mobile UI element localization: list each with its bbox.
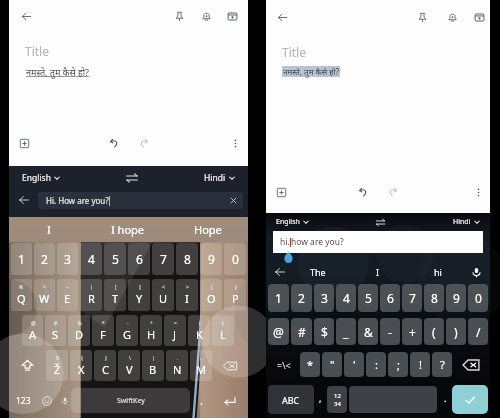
button[interactable]: . [439, 383, 452, 416]
button[interactable]: Redo [382, 181, 404, 203]
button[interactable]: & [358, 318, 378, 345]
button[interactable]: 4 [336, 284, 356, 312]
button[interactable]: SwiftKey [71, 388, 190, 413]
button[interactable]: Hope [168, 217, 248, 241]
button[interactable]: Backspace [213, 349, 247, 382]
button[interactable]: Undo [352, 181, 374, 203]
button[interactable]: , [314, 383, 327, 416]
button[interactable]: ^ [34, 279, 55, 311]
button[interactable]: 0 [468, 284, 488, 312]
button[interactable]: Add [270, 181, 292, 203]
button[interactable]: Swap languages [375, 217, 386, 228]
button[interactable]: ] [128, 279, 150, 311]
button[interactable]: + [140, 315, 162, 346]
button[interactable]: I [9, 217, 88, 241]
button[interactable]: 9 [446, 284, 466, 312]
button[interactable]: 123 [11, 385, 36, 416]
button[interactable]: \ [118, 350, 140, 381]
button[interactable]: ( [424, 318, 444, 345]
button[interactable]: 0 [224, 243, 246, 275]
button[interactable]: ; [388, 352, 408, 377]
button[interactable]: @ [268, 318, 289, 345]
button[interactable]: Pin [411, 6, 433, 28]
button[interactable]: 2 [291, 284, 312, 312]
button[interactable]: _ [336, 318, 356, 345]
button[interactable]: 6 [380, 284, 400, 312]
button[interactable]: 6 [128, 243, 150, 275]
button[interactable]: . [166, 350, 188, 381]
button[interactable]: English [274, 214, 311, 230]
button[interactable]: % [11, 279, 32, 311]
button[interactable]: Archive [221, 5, 243, 27]
button[interactable]: Enter [452, 385, 488, 414]
button[interactable]: ( [188, 315, 210, 346]
button[interactable]: | [142, 350, 164, 381]
button[interactable]: 3 [57, 243, 78, 275]
button[interactable]: ! [410, 352, 430, 377]
button[interactable]: I hope [88, 217, 168, 241]
button[interactable]: Translation input [38, 192, 243, 209]
button[interactable]: < [152, 279, 174, 311]
button[interactable]: =\< [268, 350, 299, 379]
button[interactable]: | [80, 279, 102, 311]
button[interactable]: Redo [133, 132, 155, 154]
button[interactable]: $ [314, 318, 334, 345]
button[interactable]: ABC [268, 385, 314, 414]
button[interactable]: * [92, 315, 114, 346]
button[interactable]: Back [15, 5, 37, 27]
button[interactable]: Back [14, 190, 34, 210]
button[interactable]: I [348, 262, 408, 281]
button[interactable]: Back [271, 6, 293, 28]
button[interactable]: @ [22, 315, 43, 346]
button[interactable]: . [190, 385, 213, 416]
button[interactable]: * [300, 352, 320, 377]
button[interactable]: 1 [11, 243, 32, 275]
button[interactable]: # [291, 318, 312, 345]
button[interactable]: + [402, 318, 422, 345]
button[interactable]: = [164, 315, 186, 346]
button[interactable]: ( [200, 279, 222, 311]
button[interactable]: Hindi [451, 214, 482, 230]
button[interactable]: Text input [273, 231, 483, 253]
button[interactable]: Emoji [36, 385, 58, 416]
button[interactable]: , [190, 350, 212, 381]
button[interactable]: Add [13, 132, 35, 154]
button[interactable]: $ [46, 350, 68, 381]
button[interactable]: The [288, 262, 348, 281]
button[interactable]: } [94, 350, 116, 381]
button[interactable]: 9 [200, 243, 222, 275]
button[interactable]: English [20, 169, 62, 187]
button[interactable]: ) [224, 279, 246, 311]
button[interactable]: 1 [268, 284, 289, 312]
button[interactable]: # [45, 315, 66, 346]
button[interactable]: 4 [80, 243, 102, 275]
button[interactable]: More options [224, 132, 246, 154]
button[interactable]: " [322, 352, 342, 377]
button[interactable]: ) [446, 318, 466, 345]
button[interactable]: Archive [468, 6, 490, 28]
button[interactable]: / [468, 318, 488, 345]
button[interactable]: : [366, 352, 386, 377]
button[interactable]: Voice input [58, 385, 71, 416]
button[interactable]: 8 [424, 284, 444, 312]
button[interactable]: Undo [103, 132, 125, 154]
button[interactable]: Shift [10, 349, 45, 382]
button[interactable]: 2 [34, 243, 55, 275]
button[interactable]: 7 [152, 243, 174, 275]
button[interactable]: Backspace [453, 350, 488, 379]
button[interactable]: ' [344, 352, 364, 377]
button[interactable]: 12 34 [327, 386, 347, 413]
button[interactable]: Back [272, 264, 288, 280]
button[interactable]: More options [467, 181, 489, 203]
button[interactable]: Enter [213, 385, 246, 416]
button[interactable]: Pin [168, 5, 190, 27]
button[interactable]: 8 [176, 243, 198, 275]
button[interactable]: 7 [402, 284, 422, 312]
button[interactable]: 5 [358, 284, 378, 312]
button[interactable]: & [68, 315, 90, 346]
button[interactable]: ) [212, 315, 234, 346]
button[interactable]: ~ [57, 279, 78, 311]
button[interactable]: - [116, 315, 138, 346]
button[interactable]: ? [432, 352, 452, 377]
button[interactable]: hi [408, 262, 468, 281]
